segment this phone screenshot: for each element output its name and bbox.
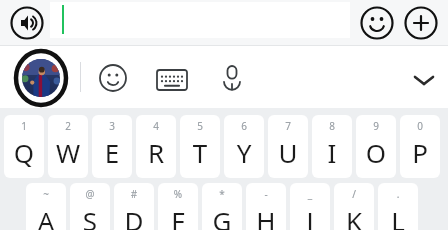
button[interactable]: Add: [402, 4, 440, 42]
button[interactable]: *: [202, 183, 242, 230]
button[interactable]: %: [158, 183, 198, 230]
staticText: 5: [180, 119, 220, 133]
button[interactable]: Broadcast: [8, 4, 46, 42]
staticText: F: [158, 203, 198, 230]
button[interactable]: 2: [48, 115, 88, 178]
staticText: *: [202, 187, 242, 201]
staticText: I: [312, 135, 352, 170]
staticText: T: [180, 135, 220, 170]
staticText: 9: [356, 119, 396, 133]
staticText: 4: [136, 119, 176, 133]
staticText: 6: [224, 119, 264, 133]
staticText: P: [400, 135, 440, 170]
staticText: 2: [48, 119, 88, 133]
button[interactable]: 4: [136, 115, 176, 178]
button[interactable]: Emoji: [358, 4, 396, 42]
staticText: 1: [4, 119, 44, 133]
button[interactable]: -: [246, 183, 286, 230]
staticText: L: [378, 203, 418, 230]
button[interactable]: Voice input: [212, 58, 252, 98]
staticText: Y: [224, 135, 264, 170]
staticText: U: [268, 135, 308, 170]
staticText: J: [290, 203, 330, 230]
staticText: H: [246, 203, 286, 230]
staticText: ~: [26, 187, 66, 201]
staticText: W: [48, 135, 88, 170]
button[interactable]: @: [70, 183, 110, 230]
staticText: Q: [4, 135, 44, 170]
button[interactable]: Profile: [14, 49, 68, 107]
staticText: -: [246, 187, 286, 201]
staticText: O: [356, 135, 396, 170]
staticText: S: [70, 203, 110, 230]
button[interactable]: Stickers: [95, 60, 131, 96]
button[interactable]: 3: [92, 115, 132, 178]
staticText: K: [334, 203, 374, 230]
staticText: .: [378, 187, 418, 201]
staticText: 0: [400, 119, 440, 133]
staticText: @: [70, 187, 110, 201]
staticText: _: [290, 187, 330, 201]
button[interactable]: #: [114, 183, 154, 230]
staticText: /: [334, 187, 374, 201]
button[interactable]: [50, 2, 350, 38]
button[interactable]: 8: [312, 115, 352, 178]
button[interactable]: 0: [400, 115, 440, 178]
staticText: E: [92, 135, 132, 170]
button[interactable]: ~: [26, 183, 66, 230]
staticText: 7: [268, 119, 308, 133]
button[interactable]: 5: [180, 115, 220, 178]
button[interactable]: _: [290, 183, 330, 230]
staticText: #: [114, 187, 154, 201]
staticText: R: [136, 135, 176, 170]
button[interactable]: Keyboard: [152, 60, 192, 100]
button[interactable]: 7: [268, 115, 308, 178]
button[interactable]: Collapse: [404, 60, 444, 100]
staticText: %: [158, 187, 198, 201]
button[interactable]: .: [378, 183, 418, 230]
staticText: A: [26, 203, 66, 230]
button[interactable]: 6: [224, 115, 264, 178]
staticText: 3: [92, 119, 132, 133]
staticText: G: [202, 203, 242, 230]
button[interactable]: /: [334, 183, 374, 230]
button[interactable]: 1: [4, 115, 44, 178]
button[interactable]: 9: [356, 115, 396, 178]
staticText: D: [114, 203, 154, 230]
staticText: 8: [312, 119, 352, 133]
